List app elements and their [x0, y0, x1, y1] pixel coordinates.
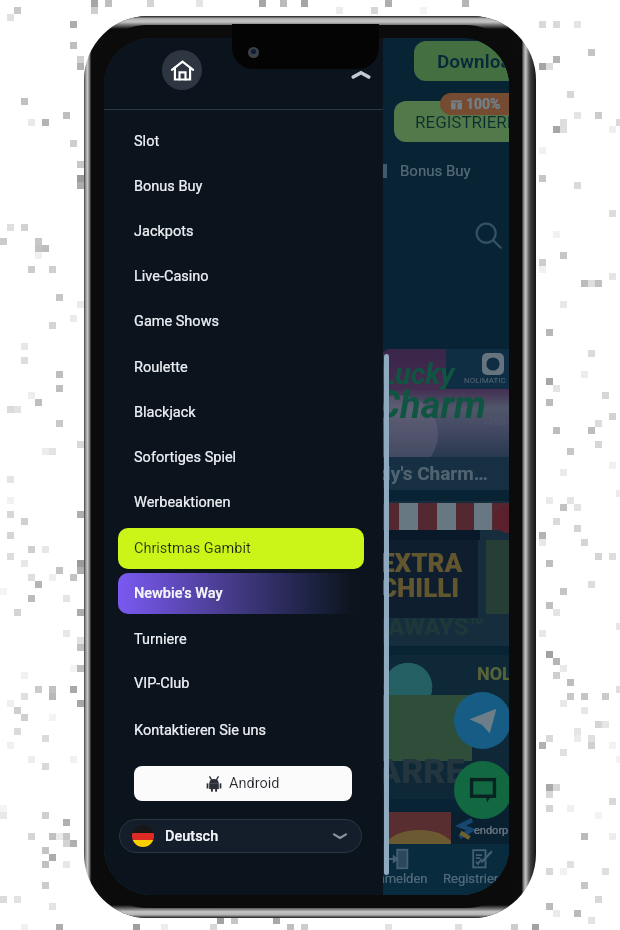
button[interactable]: Live-Casino [104, 254, 383, 299]
staticText: AWAYS™ [388, 613, 484, 641]
staticText: NOLIMATIC [464, 376, 506, 385]
staticText: REGISTRIEREN [415, 112, 509, 132]
staticText: NOLIMIT [477, 663, 509, 684]
staticText: Slot [134, 133, 160, 150]
button[interactable]: Telegram [454, 692, 509, 749]
staticText: Newbie's Way [134, 585, 223, 602]
staticText: Download [437, 50, 509, 72]
staticText: Anmelden [369, 871, 428, 886]
button[interactable]: Game Shows [104, 299, 383, 344]
staticText: Turniere [134, 631, 187, 648]
button[interactable]: Live chat [454, 761, 509, 819]
staticText: Live-Casino [134, 268, 209, 285]
staticText: EXTRA [380, 548, 463, 578]
button[interactable]: Anmelden [357, 844, 439, 895]
staticText: Bonus Buy [134, 178, 203, 195]
button[interactable]: VIP-Club [104, 661, 383, 706]
staticText: VIP-Club [134, 675, 190, 692]
staticText: Charm [380, 383, 486, 428]
staticText: Bonus Buy [400, 162, 471, 180]
staticText: Blackjack [134, 404, 196, 421]
button[interactable]: Home [162, 50, 202, 90]
staticText: dy's Charm… [380, 462, 488, 484]
staticText: Registrierung [443, 871, 509, 886]
staticText: Lucky [380, 357, 455, 391]
button[interactable]: Newbie's Way [118, 573, 364, 614]
button[interactable]: Turniere [104, 617, 383, 662]
button[interactable]: Sofortiges Spiel [104, 435, 383, 480]
staticText: deluxe [484, 409, 509, 429]
button[interactable]: Christmas Gambit [118, 528, 364, 569]
staticText: Christmas Gambit [134, 540, 251, 557]
staticText: endorphina [474, 824, 509, 837]
staticText: Kontaktieren Sie uns [134, 722, 267, 739]
staticText: CHILLI [380, 573, 460, 603]
staticText: ARRE [380, 751, 465, 791]
button[interactable]: Slot [104, 119, 383, 164]
button[interactable]: Werbeaktionen [104, 480, 383, 525]
staticText: Sofortiges Spiel [134, 449, 237, 466]
staticText: Jackpots [134, 223, 194, 240]
button[interactable]: Collapse menu [341, 55, 381, 95]
staticText: Game Shows [134, 313, 220, 330]
button[interactable]: Jackpots [104, 209, 383, 254]
button[interactable]: Registrierung [440, 844, 509, 895]
staticText: Werbeaktionen [134, 494, 231, 511]
button[interactable]: Deutsch [119, 819, 362, 853]
staticText: Deutsch [165, 828, 219, 845]
button[interactable]: Android [134, 766, 352, 801]
button[interactable]: Kontaktieren Sie uns [104, 708, 383, 753]
button[interactable]: Roulette [104, 345, 383, 390]
button[interactable]: Bonus Buy [104, 164, 383, 209]
button[interactable]: Blackjack [104, 390, 383, 435]
staticText: Android [229, 775, 280, 792]
staticText: 100% [466, 96, 501, 112]
staticText: Roulette [134, 359, 188, 376]
